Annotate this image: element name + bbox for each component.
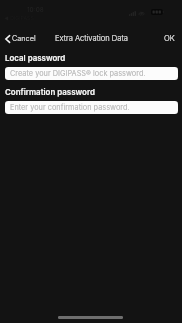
- staticText: Local password: [5, 53, 66, 63]
- staticText: Enter your confirmation password.: [10, 103, 130, 112]
- button[interactable]: Create your DIGIPASS® lock password.: [5, 67, 178, 80]
- staticText: Create your DIGIPASS® lock password.: [10, 69, 146, 78]
- staticText: 10:08: [27, 6, 44, 14]
- button[interactable]: Enter your confirmation password.: [5, 101, 178, 114]
- button[interactable]: Cancel: [0, 33, 42, 44]
- staticText: Confirmation password: [5, 87, 95, 97]
- staticText: OK: [164, 34, 175, 43]
- button[interactable]: OK: [156, 33, 182, 44]
- staticText: Extra Activation Data: [55, 34, 128, 43]
- staticText: Cancel: [12, 34, 36, 43]
